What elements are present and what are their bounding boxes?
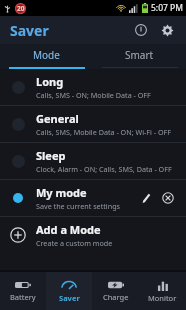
staticText: Calls, SMS - ON; Mobile Data - OFF: [36, 90, 151, 100]
staticText: Saver: [59, 293, 80, 303]
button[interactable]: Settings: [156, 19, 178, 41]
staticText: 5:07 PM: [151, 2, 183, 14]
button[interactable]: General: [0, 106, 186, 142]
button[interactable]: My mode: [0, 180, 186, 216]
staticText: Create a custom mode: [36, 238, 113, 248]
staticText: Calls, SMS, Mobile Data - ON; Wi-Fi - OF…: [36, 127, 172, 137]
staticText: My mode: [36, 185, 87, 200]
staticText: Monitor: [148, 293, 177, 303]
staticText: Saver: [10, 21, 49, 40]
button[interactable]: Delete: [158, 188, 178, 208]
staticText: Battery: [10, 292, 36, 302]
button[interactable]: Power: [130, 19, 152, 41]
button[interactable]: Battery: [0, 272, 46, 310]
staticText: Long: [36, 74, 64, 89]
staticText: Add a Mode: [36, 222, 101, 237]
button[interactable]: Add a Mode: [0, 217, 186, 253]
staticText: Charge: [103, 292, 129, 302]
staticText: Sleep: [36, 148, 66, 163]
staticText: Clock, Alarm - ON; Calls, SMS, Data - OF…: [36, 164, 172, 174]
staticText: Mode: [33, 48, 60, 62]
button[interactable]: Monitor: [139, 272, 186, 310]
staticText: Save the current settings: [36, 201, 121, 211]
button[interactable]: Sleep: [0, 143, 186, 179]
button[interactable]: Saver: [46, 272, 92, 310]
button[interactable]: Smart: [93, 44, 186, 66]
button[interactable]: Charge: [92, 272, 139, 310]
button[interactable]: Mode: [0, 44, 93, 66]
button[interactable]: Edit: [136, 188, 156, 208]
staticText: General: [36, 111, 79, 126]
button[interactable]: Long: [0, 69, 186, 105]
staticText: 20: [17, 4, 25, 13]
staticText: Smart: [125, 48, 154, 62]
